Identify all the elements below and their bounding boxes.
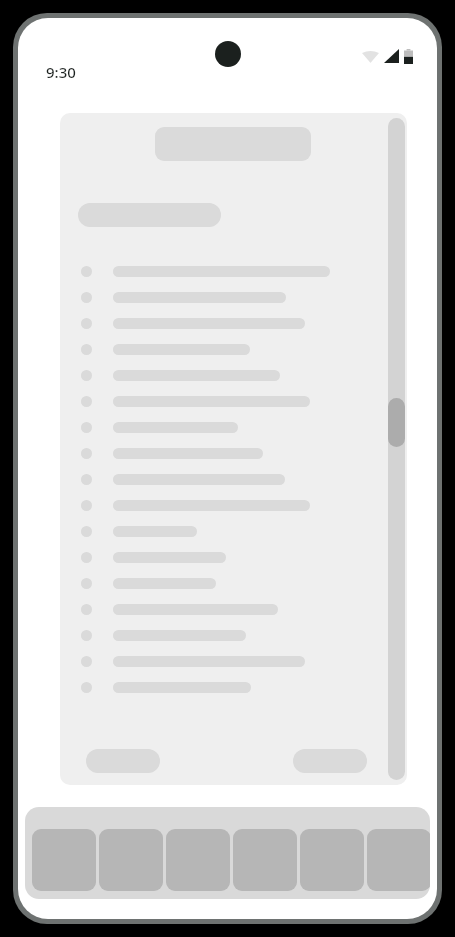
button[interactable]: Confirm <box>293 749 367 773</box>
button[interactable]: List item 10 <box>60 492 407 518</box>
button[interactable]: List item 1 <box>60 258 407 284</box>
button[interactable]: List item 2 <box>60 284 407 310</box>
button[interactable]: Navigation tab 1 <box>32 829 96 891</box>
button[interactable]: List item 4 <box>60 336 407 362</box>
button[interactable]: Navigation tab 5 <box>300 829 364 891</box>
button[interactable]: List item 3 <box>60 310 407 336</box>
button[interactable]: List item 17 <box>60 674 407 700</box>
button[interactable]: Navigation tab 6 <box>367 829 430 891</box>
button[interactable]: Cancel <box>86 749 160 773</box>
button[interactable]: Navigation tab 3 <box>166 829 230 891</box>
button[interactable]: List item 6 <box>60 388 407 414</box>
button[interactable]: List item 11 <box>60 518 407 544</box>
button[interactable]: List item 15 <box>60 622 407 648</box>
button[interactable]: List item 8 <box>60 440 407 466</box>
button[interactable]: Navigation tab 4 <box>233 829 297 891</box>
button[interactable]: List item 13 <box>60 570 407 596</box>
button[interactable]: Navigation tab 2 <box>99 829 163 891</box>
button[interactable]: List item 9 <box>60 466 407 492</box>
button[interactable]: List item 7 <box>60 414 407 440</box>
button[interactable] <box>78 203 221 227</box>
staticText: 9:30 <box>46 62 76 82</box>
button[interactable]: List item 12 <box>60 544 407 570</box>
button[interactable]: List item 16 <box>60 648 407 674</box>
button[interactable]: List item 5 <box>60 362 407 388</box>
button[interactable]: List item 14 <box>60 596 407 622</box>
